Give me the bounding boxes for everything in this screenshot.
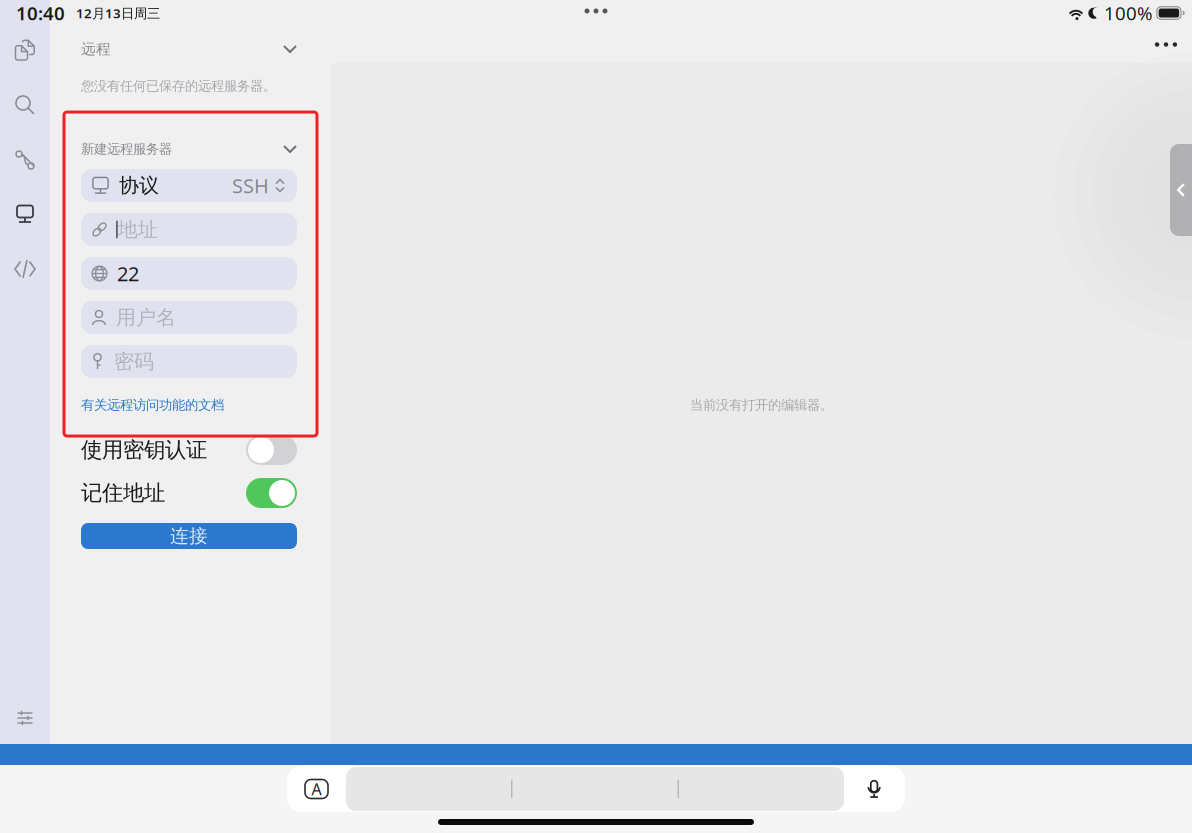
button[interactable]: 协议 <box>81 169 297 202</box>
staticText: 新建远程服务器 <box>81 141 172 157</box>
staticText: 当前没有打开的编辑器。 <box>690 397 833 413</box>
button[interactable]: 22 <box>81 257 297 290</box>
staticText: 10:40 <box>16 1 65 25</box>
button[interactable]: 地址 <box>81 213 297 246</box>
staticText: SSH <box>232 172 269 199</box>
button[interactable]: 有关远程访问功能的文档 <box>81 395 297 415</box>
button[interactable]: Search <box>0 86 50 124</box>
button[interactable]: Files <box>0 31 50 69</box>
staticText: A <box>311 778 321 800</box>
staticText: 密码 <box>114 349 154 374</box>
button[interactable]: 新建远程服务器 <box>81 138 297 160</box>
button[interactable]: Remote <box>0 195 50 233</box>
staticText: 有关远程访问功能的文档 <box>81 397 224 413</box>
staticText: 连接 <box>170 524 208 547</box>
button[interactable]: Source Control <box>0 141 50 179</box>
button[interactable]: 密码 <box>81 345 297 378</box>
button[interactable]: 用户名 <box>81 301 297 334</box>
button[interactable]: More options <box>1144 26 1188 63</box>
button[interactable]: 记住地址 <box>81 478 297 508</box>
staticText: 记住地址 <box>81 480 165 506</box>
button[interactable]: Code snippets <box>0 250 50 288</box>
staticText: 您没有任何已保存的远程服务器。 <box>81 78 276 94</box>
button[interactable]: Input language <box>287 766 346 812</box>
button[interactable]: 使用密钥认证 <box>81 435 297 465</box>
staticText: 使用密钥认证 <box>81 437 207 463</box>
button[interactable]: 远程 <box>81 37 297 61</box>
staticText: 22 <box>117 260 139 287</box>
button[interactable]: 连接 <box>81 523 297 549</box>
staticText: 协议 <box>119 173 159 198</box>
staticText: 地址 <box>118 217 158 242</box>
staticText: 用户名 <box>116 305 176 330</box>
button[interactable]: Dictate <box>844 766 905 812</box>
button[interactable]: Settings <box>0 704 50 732</box>
staticText: 100% <box>1104 1 1153 25</box>
staticText: 12月13日周三 <box>76 4 160 22</box>
staticText: 远程 <box>81 40 111 58</box>
